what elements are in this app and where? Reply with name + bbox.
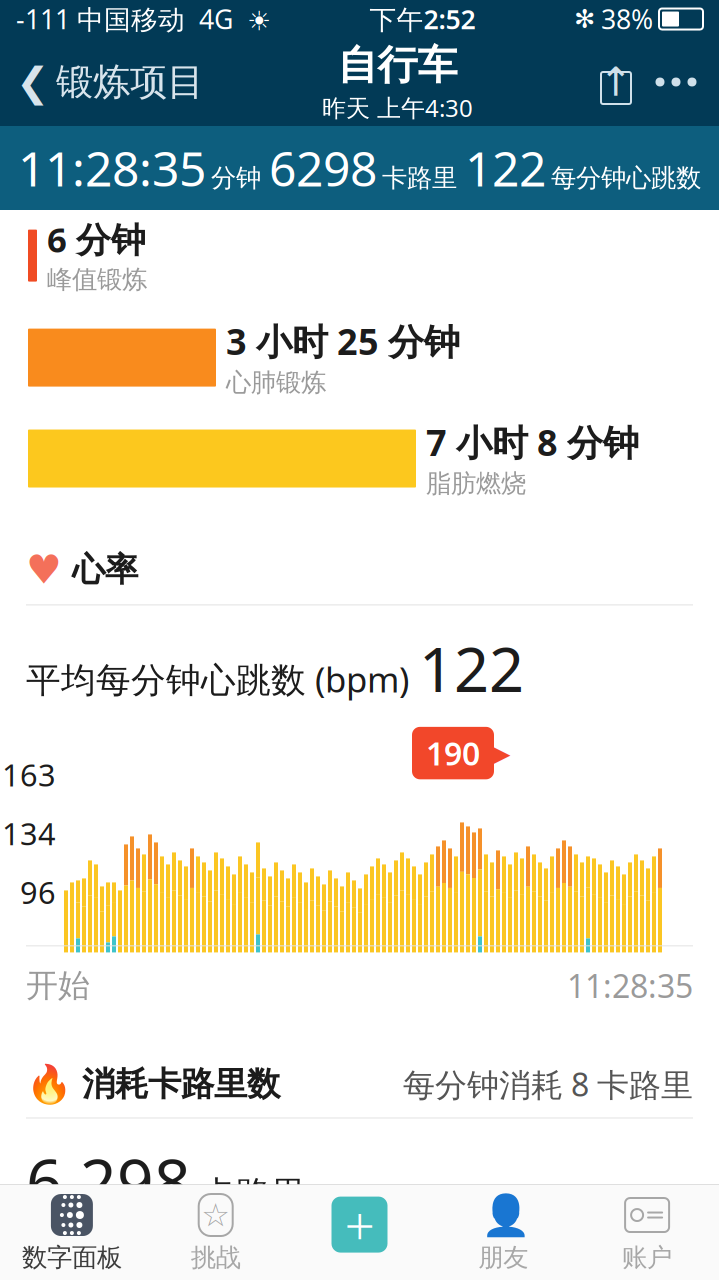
staticText: 锻炼项目 <box>56 59 204 105</box>
staticText: ❮ <box>16 59 50 105</box>
staticText: 朋友 <box>478 1242 528 1273</box>
staticText: 🔥 <box>26 1063 72 1105</box>
button[interactable]: 更多 <box>641 57 711 107</box>
staticText: 每分钟消耗 8 卡路里 <box>403 1063 693 1105</box>
staticText: 7 小时 8 分钟 <box>426 418 639 466</box>
button[interactable]: 账户 <box>575 1186 719 1279</box>
button[interactable]: ☆ <box>144 1186 288 1279</box>
staticText: 96 <box>20 872 56 912</box>
button[interactable]: ❮ <box>0 49 204 115</box>
staticText: 账户 <box>622 1242 672 1273</box>
staticText: 20 <box>20 1218 56 1258</box>
staticText: 134 <box>2 813 56 854</box>
staticText: 3 小时 25 分钟 <box>226 317 460 365</box>
staticText: 11:28:35 <box>567 964 693 1007</box>
staticText: 昨天 上午4:30 <box>322 92 473 123</box>
staticText: 6 分钟 <box>47 216 146 262</box>
staticText: ☆ <box>201 1197 230 1233</box>
staticText: 6298 <box>269 136 377 200</box>
staticText: 平均每分钟心跳数 (bpm) <box>26 656 409 702</box>
staticText: 122 <box>419 627 524 709</box>
staticText: ✻ <box>574 5 595 33</box>
staticText: ▶ <box>488 736 511 770</box>
staticText: 👤 <box>481 1192 531 1238</box>
staticText: ♥ <box>26 547 62 592</box>
staticText: 6,298 <box>26 1138 191 1223</box>
staticText: ↑ <box>599 59 633 105</box>
staticText: 190 <box>426 732 480 774</box>
staticText: 每分钟心跳数 <box>551 163 701 194</box>
staticText: 11:28:35 <box>18 136 206 200</box>
button[interactable]: 👤 <box>431 1186 575 1279</box>
staticText: 38% <box>601 1 653 37</box>
staticText: 数字面板 <box>22 1242 122 1273</box>
button[interactable]: 记录 <box>288 1185 431 1280</box>
staticText: 脂肪燃烧 <box>426 468 526 499</box>
staticText: 163 <box>2 754 56 795</box>
button[interactable]: 数字面板 <box>0 1186 144 1279</box>
staticText: 开始 <box>26 966 90 1005</box>
staticText: 心肺锻炼 <box>226 367 326 398</box>
staticText: 分钟 <box>211 163 261 194</box>
staticText: -111 中国移动 4G ☀ <box>16 1 271 37</box>
staticText: 卡路里 <box>382 163 457 194</box>
staticText: 自行车 <box>337 40 457 90</box>
staticText: 122 <box>465 136 546 200</box>
staticText: 消耗卡路里数 <box>82 1064 280 1105</box>
staticText: 卡路里 <box>201 1173 306 1216</box>
staticText: 峰值锻炼 <box>47 264 147 295</box>
staticText: 心率 <box>72 549 138 590</box>
staticText: 挑战 <box>191 1242 241 1273</box>
button[interactable]: 分享 <box>591 57 641 107</box>
staticText: 下午2:52 <box>369 1 475 37</box>
staticText: + <box>344 1189 374 1260</box>
